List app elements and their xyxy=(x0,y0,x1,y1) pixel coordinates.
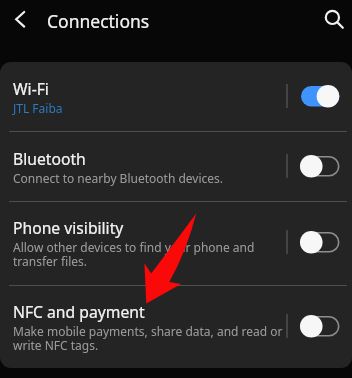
staticText: Make mobile payments, share data, and re… xyxy=(13,323,283,354)
button[interactable]: Turn off Wi-Fi xyxy=(296,81,344,111)
staticText: Allow other devices to find your phone a… xyxy=(13,239,255,270)
button[interactable] xyxy=(0,201,352,284)
staticText: JTL Faiba xyxy=(13,100,63,116)
button[interactable]: Turn on Phone visibility xyxy=(296,227,344,257)
staticText: Bluetooth xyxy=(13,148,86,169)
button[interactable] xyxy=(0,61,352,131)
staticText: Phone visibility xyxy=(13,217,124,238)
staticText: NFC and payment xyxy=(13,301,145,322)
staticText: Wi-Fi xyxy=(13,78,49,99)
button[interactable]: Turn on Bluetooth xyxy=(296,151,344,181)
button[interactable]: Navigate up xyxy=(2,1,40,39)
button[interactable] xyxy=(0,132,352,200)
button[interactable]: Search xyxy=(314,0,352,38)
staticText: Connect to nearby Bluetooth devices. xyxy=(13,170,224,186)
staticText: Connections xyxy=(47,9,150,33)
button[interactable]: Turn on NFC and payment xyxy=(296,311,344,341)
button[interactable] xyxy=(0,285,352,368)
